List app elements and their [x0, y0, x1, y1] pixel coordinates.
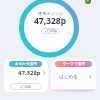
- button[interactable]: テーマで運用: [51, 59, 96, 92]
- staticText: 47,328p: [34, 15, 67, 27]
- staticText: +7,328p: [45, 29, 57, 33]
- staticText: はじめる: [59, 74, 78, 80]
- staticText: おまかせ運用: [15, 62, 37, 67]
- other: Eco: [85, 0, 91, 4]
- staticText: +7,328p: [20, 85, 32, 89]
- button[interactable]: おまかせ運用: [4, 59, 48, 92]
- staticText: 運用ポイント: [38, 11, 64, 16]
- staticText: テーマで運用: [63, 62, 85, 67]
- staticText: 47,328p: [18, 69, 41, 77]
